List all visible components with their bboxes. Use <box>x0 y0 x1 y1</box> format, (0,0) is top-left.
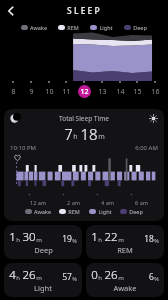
staticText: m <box>36 274 42 282</box>
staticText: Awake <box>34 208 51 215</box>
staticText: Total Sleep Time <box>59 114 109 123</box>
staticText: % <box>72 237 77 244</box>
staticText: h <box>16 274 20 282</box>
staticText: 7 <box>64 124 73 144</box>
staticText: Light <box>99 24 113 31</box>
staticText: 18 <box>80 124 98 144</box>
button[interactable]: 15 <box>130 81 144 98</box>
staticText: % <box>72 275 77 282</box>
button[interactable]: Light <box>88 208 113 215</box>
button[interactable]: REM <box>58 208 81 215</box>
staticText: REM <box>67 24 79 31</box>
staticText: 12 am <box>30 199 46 206</box>
button[interactable]: 16 <box>148 81 162 98</box>
staticText: % <box>154 237 159 244</box>
button[interactable]: Deep <box>123 24 148 31</box>
staticText: 4 <box>9 267 16 283</box>
staticText: 9 <box>29 87 34 97</box>
staticText: 12 <box>80 87 89 97</box>
staticText: 0 <box>91 267 98 283</box>
button[interactable]: 8 <box>6 81 20 98</box>
staticText: 13 <box>98 87 107 97</box>
staticText: 15 <box>133 87 142 97</box>
staticText: Awake <box>30 24 47 31</box>
staticText: 1 <box>9 229 16 245</box>
staticText: 8 <box>11 87 16 97</box>
button[interactable]: 4 <box>4 263 82 297</box>
staticText: h <box>16 236 20 244</box>
staticText: Light <box>34 283 52 293</box>
staticText: SLEEP <box>67 5 102 17</box>
staticText: h <box>73 132 78 142</box>
staticText: 26 <box>22 267 36 283</box>
staticText: m <box>118 274 124 282</box>
staticText: 6:00 AM <box>135 144 158 152</box>
staticText: Light <box>98 208 112 215</box>
button[interactable]: REM <box>57 24 80 31</box>
staticText: 2 am <box>67 199 80 206</box>
staticText: Deep <box>34 245 53 255</box>
button[interactable]: 13 <box>95 81 109 98</box>
staticText: 26 <box>104 267 118 283</box>
staticText: 18 <box>144 233 154 245</box>
staticText: 10:10 PM <box>10 144 36 152</box>
staticText: 10 <box>45 87 54 97</box>
staticText: 6 <box>149 271 154 283</box>
button[interactable]: 12 <box>77 81 91 98</box>
button[interactable]: 9 <box>24 81 38 98</box>
button[interactable]: 14 <box>113 81 127 98</box>
staticText: Awake <box>113 283 137 293</box>
staticText: REM <box>117 245 133 255</box>
staticText: 6 am <box>135 199 148 206</box>
staticText: Deep <box>129 208 143 215</box>
staticText: 30 <box>22 229 36 245</box>
staticText: m <box>98 132 105 142</box>
button[interactable]: 11 <box>59 81 73 98</box>
staticText: Deep <box>133 24 147 31</box>
staticText: h <box>98 274 102 282</box>
button[interactable]: Back <box>0 0 22 22</box>
staticText: 14 <box>116 87 125 97</box>
staticText: m <box>36 236 42 244</box>
button[interactable]: Deep <box>119 208 144 215</box>
button[interactable]: 0 <box>86 263 164 297</box>
staticText: h <box>98 236 102 244</box>
staticText: 11 <box>62 87 71 97</box>
staticText: 4 am <box>101 199 114 206</box>
button[interactable]: Awake <box>24 208 52 215</box>
staticText: 22 <box>104 229 118 245</box>
staticText: % <box>154 275 159 282</box>
button[interactable]: Light <box>89 24 114 31</box>
button[interactable]: 1 <box>86 225 164 259</box>
staticText: 1 <box>91 229 98 245</box>
button[interactable]: Total Sleep Time <box>4 109 164 221</box>
button[interactable]: 1 <box>4 225 82 259</box>
staticText: m <box>118 236 124 244</box>
staticText: 57 <box>62 271 72 283</box>
staticText: 19 <box>62 233 72 245</box>
other: Wake time <box>149 114 158 123</box>
button[interactable]: Awake <box>20 24 48 31</box>
staticText: REM <box>68 208 80 215</box>
staticText: 16 <box>151 87 160 97</box>
button[interactable]: 10 <box>42 81 56 98</box>
